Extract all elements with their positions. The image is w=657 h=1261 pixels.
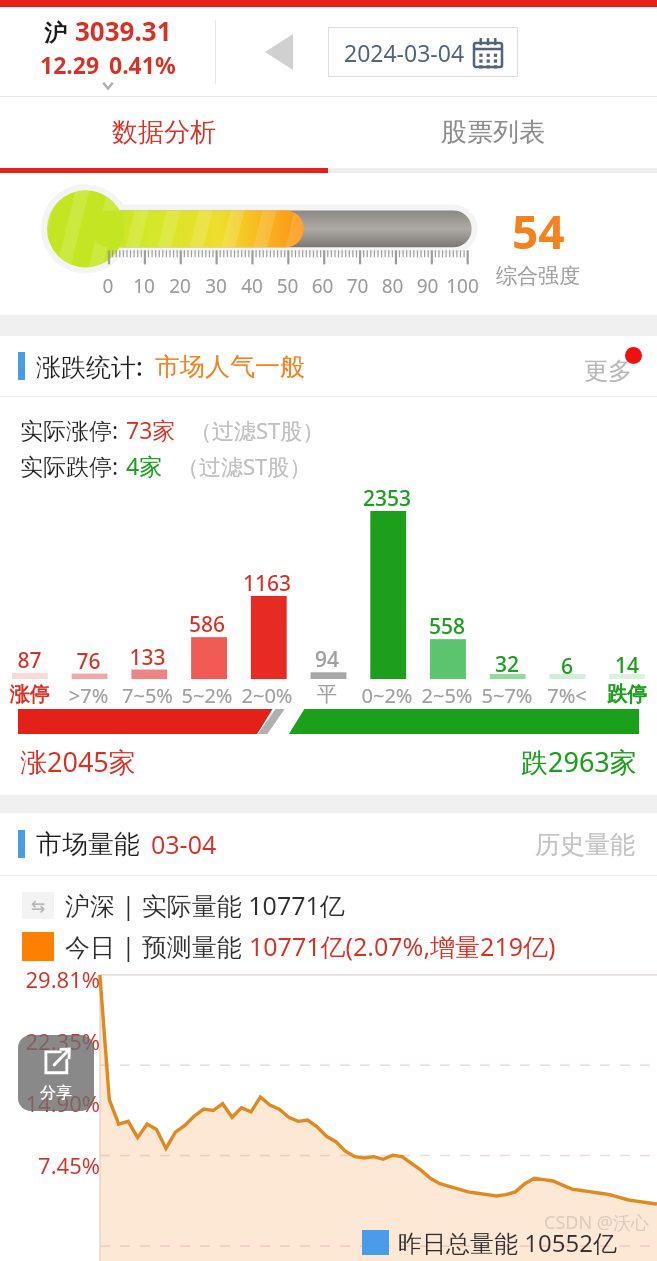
staticText: 12.29 [40,49,100,80]
staticText: 94 [297,645,357,674]
staticText: 586 [177,610,237,639]
button[interactable]: 沪 [0,7,215,96]
staticText: 更多 [584,356,632,386]
staticText: 133 [118,643,177,672]
staticText: 2~5% [417,682,477,709]
button[interactable]: Previous day [256,23,302,81]
staticText: 今日 | 预测量能 [65,929,249,963]
staticText: 涨跌统计: [36,349,143,383]
staticText: （过滤ST股） [177,451,312,481]
staticText: 6 [537,652,597,681]
staticText: 30 [198,273,234,299]
staticText: 87 [0,646,59,675]
staticText: 实际跌停: [20,450,119,481]
staticText: 沪 [44,19,67,48]
staticText: 涨2045家 [20,743,136,780]
button[interactable]: 数据分析 [0,97,328,168]
staticText: 5~7% [477,682,537,709]
staticText: 90 [410,273,445,299]
button[interactable]: 涨跌统计: [0,336,657,396]
staticText: 市场量能 [36,828,140,861]
staticText: 7~5% [118,682,177,709]
staticText: 0 [90,273,126,299]
staticText: 股票列表 [441,116,545,149]
staticText: 20 [162,273,198,299]
staticText: 54 [512,200,565,263]
button[interactable]: 股票列表 [328,97,657,168]
staticText: 数据分析 [112,116,216,149]
staticText: 0~2% [357,682,417,709]
staticText: CSDN @沃心 [544,1210,649,1235]
staticText: 10 [126,273,162,299]
staticText: 综合强度 [496,263,580,289]
staticText: 80 [375,273,410,299]
staticText: 0.41% [109,49,176,80]
staticText: 实际涨停: [20,414,119,445]
staticText: 10771亿(2.07%,增量219亿) [249,929,556,963]
staticText: 1163 [237,569,297,598]
staticText: 涨停 [0,682,59,707]
staticText: 5~2% [177,682,237,709]
staticText: 14 [597,651,657,680]
staticText: 3039.31 [75,13,172,48]
staticText: 22.35% [10,1026,100,1056]
staticText: 73家 [126,414,176,445]
staticText: 市场人气一般 [155,351,305,382]
staticText: >7% [59,682,118,709]
staticText: 2353 [357,484,417,513]
staticText: 历史量能 [535,829,635,860]
staticText: 76 [59,647,118,676]
staticText: ⇆ [31,896,46,916]
staticText: 2024-03-04 [344,37,465,68]
staticText: 跌2963家 [521,743,637,780]
staticText: 14.90% [10,1088,100,1118]
staticText: 29.81% [10,964,100,994]
staticText: 7%< [537,682,597,709]
staticText: 昨日总量能 10552亿 [398,1226,617,1259]
staticText: 分享 [40,1083,72,1103]
staticText: （过滤ST股） [190,415,325,445]
staticText: 558 [417,612,477,641]
button[interactable]: Share [18,1035,94,1111]
staticText: 平 [297,682,357,707]
staticText: 2~0% [237,682,297,709]
button[interactable]: 2024-03-04 [328,27,518,77]
staticText: 32 [477,650,537,679]
staticText: 70 [340,273,375,299]
staticText: 50 [270,273,305,299]
button[interactable]: 市场量能 [0,813,657,875]
staticText: 4家 [126,450,163,481]
staticText: 7.45% [10,1150,100,1180]
staticText: 40 [234,273,270,299]
staticText: 03-04 [151,827,217,861]
staticText: 沪深 | 实际量能 10771亿 [65,888,345,922]
staticText: 100 [445,273,480,299]
staticText: 60 [305,273,340,299]
staticText: 跌停 [597,682,657,707]
